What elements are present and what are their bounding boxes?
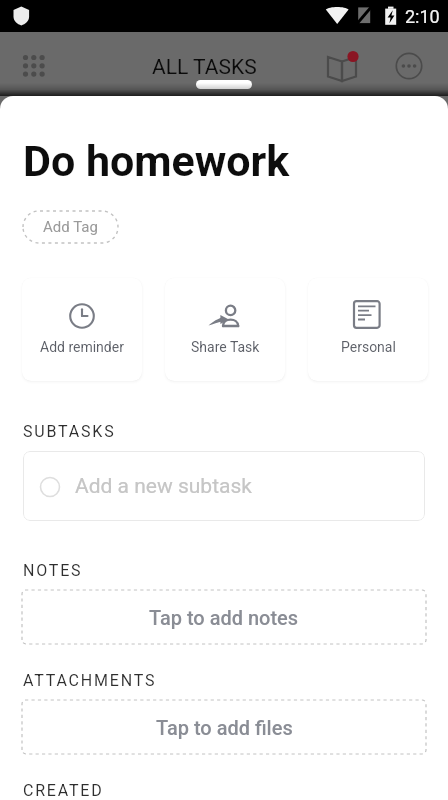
button[interactable]: Add Tag xyxy=(23,211,118,243)
staticText: Share Task xyxy=(191,339,260,355)
button[interactable]: Guide xyxy=(320,46,364,90)
staticText: 2:10 xyxy=(405,6,440,27)
staticText: Add a new subtask xyxy=(75,474,252,499)
staticText: Add Tag xyxy=(43,218,98,236)
button[interactable]: Add a new subtask xyxy=(23,451,425,521)
staticText: ATTACHMENTS xyxy=(23,671,157,690)
button[interactable]: Personal xyxy=(308,278,428,381)
staticText: ALL TASKS xyxy=(152,55,257,80)
staticText: Personal xyxy=(341,339,396,355)
staticText: Add reminder xyxy=(40,339,124,355)
button[interactable]: Tap to add files xyxy=(22,700,426,754)
button[interactable]: Share Task xyxy=(165,278,285,381)
staticText: NOTES xyxy=(23,561,83,580)
staticText: Tap to add files xyxy=(156,716,293,739)
staticText: CREATED xyxy=(23,781,104,800)
staticText: Do homework xyxy=(23,136,290,186)
button[interactable]: Tap to add notes xyxy=(22,590,426,644)
staticText: Tap to add notes xyxy=(149,606,299,629)
staticText: SUBTASKS xyxy=(23,422,116,441)
button[interactable]: Add reminder xyxy=(22,278,142,381)
button[interactable]: More options xyxy=(386,43,431,88)
button[interactable]: Apps xyxy=(14,46,54,86)
